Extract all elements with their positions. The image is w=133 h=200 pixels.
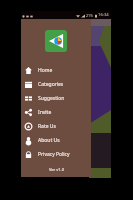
button[interactable]: Privacy Policy [21,147,91,161]
staticText: Privacy Policy [38,151,70,158]
staticText: Home [38,67,53,74]
button[interactable]: About Us [21,133,91,147]
button[interactable]: Rate Us [21,119,91,133]
staticText: 16:34 [98,12,109,18]
button[interactable]: Suggestion [21,91,91,105]
button[interactable]: Home [21,63,91,77]
staticText: Rate Us [38,123,56,130]
staticText: Categories [38,81,64,88]
button[interactable]: Categories [21,77,91,91]
button[interactable]: Invite [21,105,91,119]
staticText: 21% [86,13,94,18]
staticText: Invite [38,109,52,116]
staticText: About Us [38,137,60,144]
staticText: Suggestion [38,95,65,102]
staticText: Ver v1.0 [49,167,64,172]
